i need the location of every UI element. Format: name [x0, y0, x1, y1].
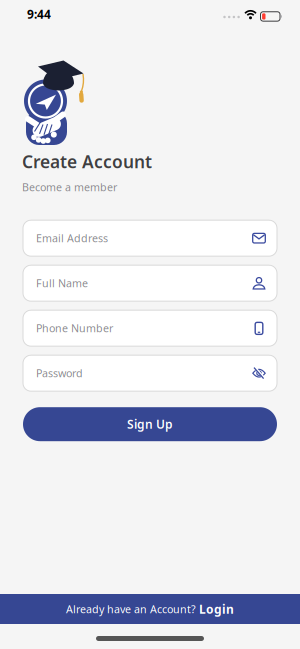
button[interactable]: Email Address: [23, 220, 277, 256]
staticText: Sign Up: [127, 416, 173, 432]
staticText: Become a member: [22, 180, 117, 194]
staticText: Phone Number: [36, 321, 113, 335]
button[interactable]: Phone Number: [23, 310, 277, 346]
button[interactable]: Already have an Account?: [0, 594, 300, 624]
staticText: Full Name: [36, 276, 88, 290]
button[interactable]: Full Name: [23, 265, 277, 301]
staticText: Create Account: [22, 150, 152, 173]
staticText: Password: [36, 366, 83, 380]
staticText: Already have an Account?: [66, 602, 196, 616]
button[interactable]: Password: [23, 355, 277, 391]
staticText: 9:44: [27, 6, 51, 22]
staticText: Email Address: [36, 231, 108, 245]
staticText: Login: [199, 601, 234, 617]
button[interactable]: Sign Up: [23, 407, 277, 441]
